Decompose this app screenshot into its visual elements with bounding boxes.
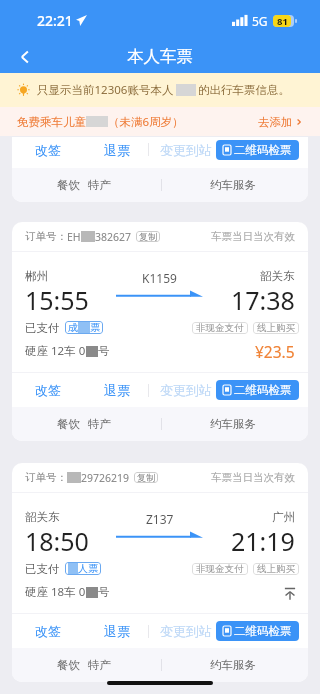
button[interactable]: 二维码检票 [216, 621, 299, 641]
staticText: 变更到站 [160, 382, 212, 398]
staticText: 81 [277, 15, 288, 27]
staticText: 特产 [88, 417, 111, 431]
button[interactable]: Back [10, 42, 40, 72]
button[interactable]: 变更到站 [159, 382, 213, 398]
button[interactable]: 变更到站 [159, 623, 213, 639]
staticText: 约车服务 [210, 417, 256, 431]
staticText: 的出行车票信息。 [198, 83, 290, 97]
staticText: 复制 [137, 472, 155, 483]
staticText: 非现金支付 [196, 322, 244, 334]
staticText: ¥3 [277, 582, 295, 603]
staticText: 复制 [139, 231, 157, 242]
staticText: Z137 [146, 511, 174, 527]
staticText: 特产 [88, 178, 111, 192]
staticText: 已支付 [25, 562, 60, 576]
staticText: 餐饮 [57, 417, 80, 431]
staticText: 郴州 [25, 269, 48, 283]
button[interactable]: 约车服务 [210, 417, 256, 431]
staticText: 只显示当前12306账号本人 [37, 82, 174, 98]
button[interactable]: 改签 [34, 142, 62, 158]
staticText: 退票 [104, 382, 130, 398]
button[interactable]: 约车服务 [210, 658, 256, 672]
staticText: 车票当日当次有效 [211, 471, 295, 484]
staticText: 变更到站 [160, 623, 212, 639]
staticText: 改签 [35, 382, 61, 398]
staticText: 订单号： [25, 471, 67, 484]
staticText: 22:21 [37, 11, 73, 30]
button[interactable]: 改签 [34, 623, 62, 639]
button[interactable]: 退票 [103, 623, 131, 639]
button[interactable]: Back to top [275, 578, 305, 608]
staticText: K1159 [142, 270, 177, 286]
staticText: 硬座 12车 0 [25, 343, 86, 359]
staticText: 18:50 [25, 524, 89, 558]
staticText: 去添加 [258, 115, 293, 129]
button[interactable]: 特产 [88, 178, 111, 192]
staticText: 硬座 18车 0 [25, 584, 86, 600]
staticText: 餐饮 [57, 178, 80, 192]
button[interactable]: 特产 [88, 658, 111, 672]
staticText: 二维码检票 [234, 143, 292, 157]
button[interactable]: 二维码检票 [216, 380, 299, 400]
staticText: 线上购买 [257, 322, 295, 334]
button[interactable]: 去添加 [258, 115, 303, 129]
button[interactable]: 餐饮 [57, 658, 80, 672]
staticText: 29726219 [81, 471, 130, 485]
staticText: 变更到站 [160, 142, 212, 158]
staticText: 退票 [104, 142, 130, 158]
staticText: （未满6周岁） [108, 114, 184, 130]
button[interactable]: 约车服务 [210, 178, 256, 192]
staticText: 21:19 [231, 524, 295, 558]
staticText: 改签 [35, 623, 61, 639]
staticText: 餐饮 [57, 658, 80, 672]
staticText: 号 [98, 344, 110, 358]
staticText: 5G [252, 13, 268, 29]
staticText: 广州 [272, 510, 295, 524]
staticText: 免费乘车儿童 [17, 115, 86, 129]
staticText: 成 [68, 321, 78, 334]
button[interactable]: 二维码检票 [216, 140, 299, 160]
staticText: 15:55 [25, 283, 89, 317]
staticText: 约车服务 [210, 658, 256, 672]
staticText: 382627 [95, 230, 132, 244]
staticText: ¥23.5 [255, 341, 295, 362]
staticText: 17:38 [231, 283, 295, 317]
staticText: 本人车票 [127, 46, 193, 67]
button[interactable]: 退票 [103, 142, 131, 158]
staticText: 线上购买 [257, 563, 295, 575]
staticText: 车票当日当次有效 [211, 230, 295, 243]
button[interactable]: 复制 [134, 472, 158, 483]
button[interactable]: 退票 [103, 382, 131, 398]
staticText: 约车服务 [210, 178, 256, 192]
staticText: 已支付 [25, 321, 60, 335]
button[interactable]: 变更到站 [159, 142, 213, 158]
staticText: 改签 [35, 142, 61, 158]
staticText: 退票 [104, 623, 130, 639]
staticText: 二维码检票 [234, 383, 292, 397]
staticText: 人票 [78, 562, 98, 575]
staticText: 韶关东 [260, 269, 295, 283]
staticText: 票 [90, 321, 100, 334]
staticText: 非现金支付 [196, 563, 244, 575]
staticText: 号 [98, 585, 110, 599]
button[interactable]: 餐饮 [57, 178, 80, 192]
staticText: 特产 [88, 658, 111, 672]
staticText: 订单号： [25, 230, 67, 243]
button[interactable]: 改签 [34, 382, 62, 398]
staticText: 韶关东 [25, 510, 60, 524]
button[interactable]: 餐饮 [57, 417, 80, 431]
button[interactable]: 特产 [88, 417, 111, 431]
button[interactable]: 复制 [136, 231, 160, 242]
staticText: EH [67, 230, 81, 244]
staticText: 二维码检票 [234, 624, 292, 638]
